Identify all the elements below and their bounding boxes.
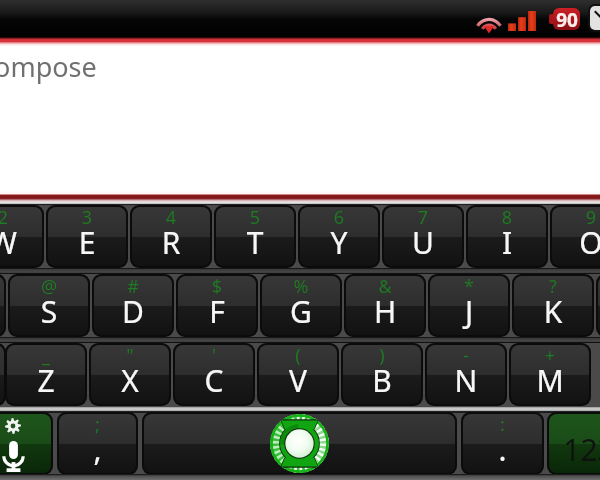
staticText: # xyxy=(94,276,172,299)
button[interactable]: @ xyxy=(10,276,88,335)
staticText: J xyxy=(430,291,508,332)
staticText: . xyxy=(463,429,542,470)
staticText: ; xyxy=(59,414,136,437)
button[interactable]: ? xyxy=(514,276,592,335)
button[interactable]: Battery 90 percent xyxy=(553,8,580,30)
other: Alarm clock xyxy=(590,6,600,30)
other: Wi-Fi xyxy=(474,10,504,35)
staticText: 5 xyxy=(216,207,294,230)
button[interactable] xyxy=(0,345,4,404)
staticText: V xyxy=(259,360,337,401)
button[interactable]: ( xyxy=(259,345,337,404)
staticText: 123 xyxy=(549,429,600,470)
button[interactable]: Voice input and settings xyxy=(0,414,51,473)
staticText: ( xyxy=(259,345,337,368)
staticText: 8 xyxy=(468,207,546,230)
staticText: ? xyxy=(514,276,592,299)
staticText: O xyxy=(552,222,600,263)
staticText: + xyxy=(511,345,589,368)
button[interactable]: 3 xyxy=(48,207,126,266)
staticText: 3 xyxy=(48,207,126,230)
button[interactable]: 5 xyxy=(216,207,294,266)
button[interactable]: 123 xyxy=(549,414,600,473)
button[interactable]: : xyxy=(463,414,542,473)
staticText: 4 xyxy=(132,207,210,230)
staticText: H xyxy=(346,291,424,332)
button[interactable]: ' xyxy=(175,345,253,404)
button[interactable]: % xyxy=(262,276,340,335)
staticText: D xyxy=(94,291,172,332)
staticText: S xyxy=(10,291,88,332)
button[interactable]: Space xyxy=(144,414,455,473)
staticText: A xyxy=(0,291,4,332)
staticText: Y xyxy=(300,222,378,263)
staticText: Compose xyxy=(0,48,97,85)
button[interactable]: & xyxy=(346,276,424,335)
staticText: 9 xyxy=(552,207,600,230)
staticText: ~ xyxy=(0,276,4,299)
button[interactable]: 7 xyxy=(384,207,462,266)
staticText: T xyxy=(216,222,294,263)
staticText: * xyxy=(430,276,508,299)
staticText: M xyxy=(511,360,589,401)
staticText: 7 xyxy=(384,207,462,230)
staticText: E xyxy=(48,222,126,263)
button[interactable]: 4 xyxy=(132,207,210,266)
button[interactable]: + xyxy=(511,345,589,404)
staticText: @ xyxy=(10,276,88,299)
staticText: X xyxy=(91,360,169,401)
staticText: K xyxy=(514,291,592,332)
staticText: % xyxy=(262,276,340,299)
button[interactable]: ; xyxy=(59,414,136,473)
staticText: R xyxy=(132,222,210,263)
staticText: 6 xyxy=(300,207,378,230)
staticText: - xyxy=(427,345,505,368)
staticText: " xyxy=(91,345,169,368)
staticText: B xyxy=(343,360,421,401)
other: Signal strength xyxy=(508,11,536,31)
staticText: 2 xyxy=(0,207,42,230)
button[interactable]: 6 xyxy=(300,207,378,266)
staticText: : xyxy=(463,414,542,437)
button[interactable]: 2 xyxy=(0,207,42,266)
button[interactable]: ! xyxy=(598,276,600,335)
staticText: & xyxy=(346,276,424,299)
button[interactable]: 8 xyxy=(468,207,546,266)
button[interactable]: _ xyxy=(7,345,85,404)
button[interactable]: " xyxy=(91,345,169,404)
button[interactable]: 9 xyxy=(552,207,600,266)
staticText: L xyxy=(598,291,600,332)
staticText: ' xyxy=(175,345,253,368)
button[interactable]: $ xyxy=(178,276,256,335)
button[interactable]: - xyxy=(427,345,505,404)
button[interactable]: ~ xyxy=(0,276,4,335)
button[interactable]: * xyxy=(430,276,508,335)
staticText: N xyxy=(427,360,505,401)
staticText: G xyxy=(262,291,340,332)
staticText: Z xyxy=(7,360,85,401)
staticText: , xyxy=(59,429,136,470)
button[interactable]: Wi-Fi xyxy=(0,0,600,38)
staticText: U xyxy=(384,222,462,263)
staticText: $ xyxy=(178,276,256,299)
staticText: ) xyxy=(343,345,421,368)
staticText: 90 xyxy=(556,8,578,29)
staticText: ! xyxy=(598,276,600,299)
button[interactable]: ) xyxy=(343,345,421,404)
staticText: C xyxy=(175,360,253,401)
staticText: I xyxy=(468,222,546,263)
button[interactable]: # xyxy=(94,276,172,335)
staticText: _ xyxy=(7,345,85,368)
staticText: F xyxy=(178,291,256,332)
staticText: W xyxy=(0,222,42,263)
